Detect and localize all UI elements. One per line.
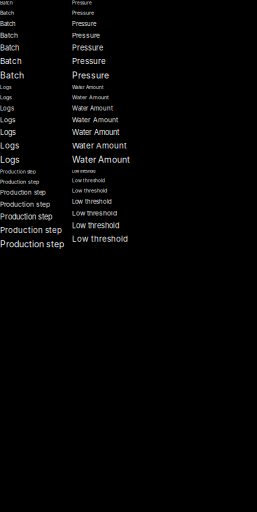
staticText: Water Amount	[72, 141, 127, 150]
staticText: Batch	[0, 70, 24, 80]
staticText: Pressure	[72, 20, 96, 27]
staticText: Logs	[0, 105, 14, 112]
staticText: Low threshold	[72, 169, 95, 174]
staticText: Water Amount	[72, 105, 113, 112]
staticText: Production step	[0, 225, 62, 235]
staticText: Water Amount	[72, 128, 119, 137]
staticText: Low threshold	[72, 234, 128, 244]
staticText: Batch	[0, 10, 14, 16]
staticText: Batch	[0, 43, 19, 52]
staticText: Water Amount	[72, 116, 118, 124]
staticText: Logs	[0, 94, 12, 101]
staticText: Low threshold	[72, 209, 117, 217]
staticText: Pressure	[72, 31, 100, 39]
staticText: Low threshold	[72, 178, 105, 183]
staticText: Pressure	[72, 10, 94, 16]
staticText: Production step	[0, 212, 52, 221]
staticText: Production step	[0, 179, 39, 185]
staticText: Production step	[0, 169, 36, 174]
staticText: Batch	[0, 31, 18, 39]
staticText: Logs	[0, 154, 20, 165]
staticText: Production step	[0, 189, 46, 196]
staticText: Pressure	[72, 0, 92, 6]
staticText: Batch	[0, 0, 13, 6]
staticText: Water Amount	[72, 154, 130, 165]
staticText: Low threshold	[72, 187, 107, 194]
staticText: Logs	[0, 141, 19, 150]
staticText: Logs	[0, 128, 16, 137]
staticText: Water Amount	[72, 84, 104, 90]
staticText: Production step	[0, 239, 64, 249]
staticText: Pressure	[72, 43, 103, 52]
staticText: Batch	[0, 56, 22, 66]
staticText: Pressure	[72, 56, 106, 66]
staticText: Logs	[0, 116, 16, 124]
staticText: Water Amount	[72, 94, 109, 101]
staticText: Production step	[0, 200, 50, 208]
staticText: Batch	[0, 20, 16, 27]
staticText: Low threshold	[72, 221, 119, 230]
staticText: Pressure	[72, 70, 109, 80]
staticText: Logs	[0, 84, 11, 90]
staticText: Low threshold	[72, 198, 112, 205]
